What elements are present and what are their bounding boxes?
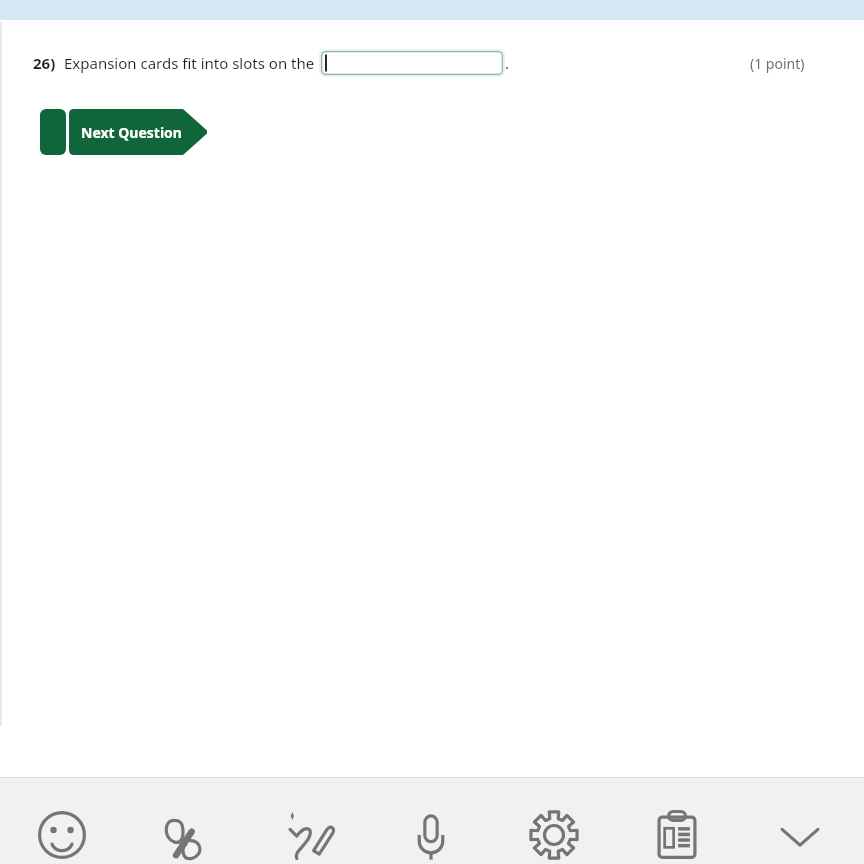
button[interactable]: Stickers xyxy=(123,777,246,864)
button[interactable]: Next Question xyxy=(69,109,209,155)
button[interactable]: Next Question xyxy=(40,109,66,155)
staticText: Expansion cards fit into slots on the xyxy=(64,53,315,73)
staticText: (1 point) xyxy=(750,54,805,73)
staticText: . xyxy=(505,53,510,73)
button[interactable]: Voice input xyxy=(369,777,492,864)
button[interactable]: Settings xyxy=(492,777,615,864)
button[interactable]: Clipboard xyxy=(615,777,738,864)
button[interactable]: Handwriting xyxy=(246,777,369,864)
button[interactable]: Hide keyboard xyxy=(738,777,861,864)
staticText: 26) xyxy=(33,53,56,73)
staticText: Next Question xyxy=(81,123,182,142)
button[interactable]: Emoji xyxy=(0,777,123,864)
button[interactable] xyxy=(321,51,503,75)
